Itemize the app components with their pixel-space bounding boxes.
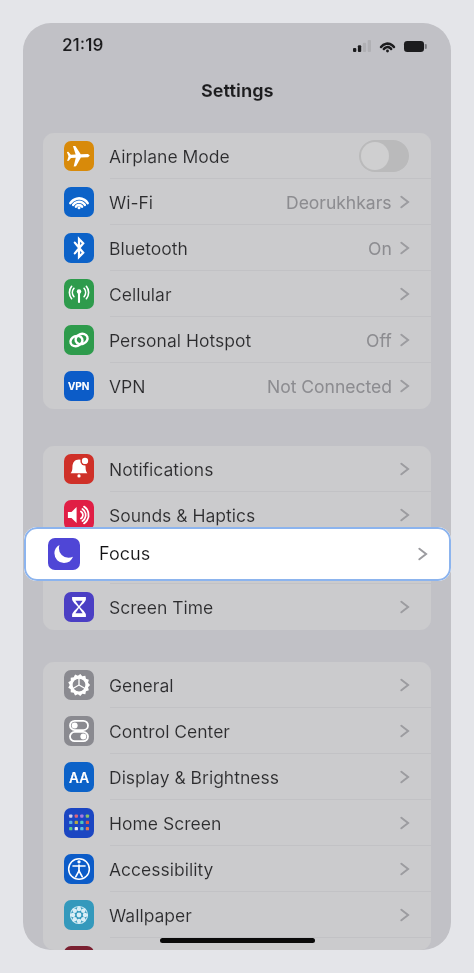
button[interactable]: Wallpaper <box>43 892 431 938</box>
staticText: 21:19 <box>62 35 104 56</box>
staticText: Screen Time <box>109 597 214 618</box>
staticText: Off <box>366 330 392 351</box>
button[interactable]: Screen Time <box>43 584 431 630</box>
staticText: Settings <box>201 80 274 102</box>
staticText: Focus <box>109 551 159 572</box>
staticText: Display & Brightness <box>109 767 279 788</box>
button[interactable]: Control Center <box>43 708 431 754</box>
staticText: VPN <box>68 380 90 392</box>
staticText: Not Connected <box>267 376 392 397</box>
staticText: Deorukhkars <box>286 192 392 213</box>
button[interactable]: Focus <box>24 527 451 581</box>
button[interactable]: Accessibility <box>43 846 431 892</box>
button[interactable]: Notifications <box>43 446 431 492</box>
staticText: Bluetooth <box>109 238 188 259</box>
button[interactable]: General <box>43 662 431 708</box>
staticText: VPN <box>109 376 146 397</box>
button[interactable]: Personal Hotspot <box>43 317 431 363</box>
other: Battery <box>404 41 427 52</box>
staticText: Focus <box>99 543 151 565</box>
button[interactable]: Focus <box>43 538 431 584</box>
staticText: Wallpaper <box>109 905 192 926</box>
other: Cellular signal <box>353 40 371 52</box>
button[interactable]: Airplane Mode <box>43 133 431 179</box>
staticText: Notifications <box>109 459 214 480</box>
staticText: On <box>368 238 392 259</box>
staticText: General <box>109 675 174 696</box>
button[interactable]: Bluetooth <box>43 225 431 271</box>
button[interactable]: VPN <box>43 363 431 409</box>
button[interactable]: Home Screen <box>43 800 431 846</box>
button[interactable]: Wi-Fi <box>43 179 431 225</box>
staticText: Accessibility <box>109 859 214 880</box>
staticText: Cellular <box>109 284 172 305</box>
staticText: Home Screen <box>109 813 222 834</box>
other: Wi-Fi signal <box>379 40 396 52</box>
button[interactable]: Sounds & Haptics <box>43 492 431 538</box>
staticText: Wi-Fi <box>109 192 154 213</box>
button[interactable]: AA <box>43 754 431 800</box>
staticText: Sounds & Haptics <box>109 505 256 526</box>
button[interactable]: Siri & Search <box>43 938 431 950</box>
button[interactable]: Cellular <box>43 271 431 317</box>
button[interactable]: Airplane Mode toggle <box>359 140 409 172</box>
staticText: Personal Hotspot <box>109 330 252 351</box>
staticText: Airplane Mode <box>109 146 230 167</box>
staticText: AA <box>69 769 90 786</box>
staticText: Control Center <box>109 721 230 742</box>
